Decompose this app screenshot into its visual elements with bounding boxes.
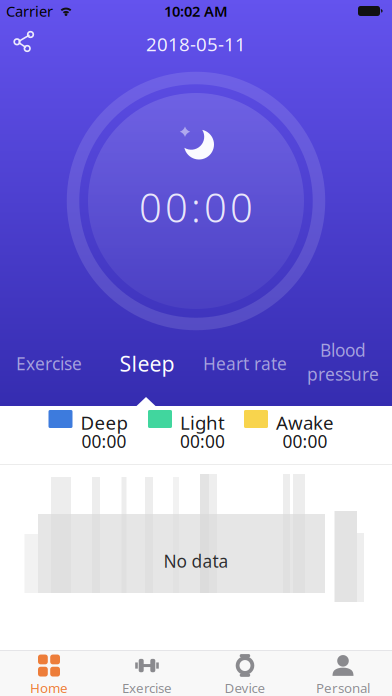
staticText: Carrier — [6, 1, 53, 21]
staticText: pressure — [307, 362, 379, 385]
staticText: Blood — [320, 338, 366, 361]
staticText: 10:02 AM — [164, 1, 228, 21]
staticText: Personal — [316, 679, 370, 696]
staticText: Awake — [276, 410, 334, 435]
button[interactable]: Exercise — [98, 651, 196, 696]
staticText: 00:00 — [180, 430, 225, 453]
button[interactable]: Device — [196, 651, 294, 696]
staticText: Exercise — [16, 352, 82, 375]
staticText: No data — [163, 549, 228, 572]
staticText: Sleep — [119, 349, 174, 378]
button[interactable]: Sleep — [98, 330, 196, 406]
staticText: 00:00 — [139, 180, 253, 233]
staticText: Exercise — [122, 679, 172, 696]
staticText: Deep — [80, 410, 127, 435]
staticText: Light — [180, 410, 225, 435]
staticText: 00:00 — [282, 430, 327, 453]
staticText: 2018-05-11 — [146, 32, 246, 56]
button[interactable]: Blood — [294, 330, 392, 406]
button[interactable]: Exercise — [0, 330, 98, 406]
staticText: Home — [30, 679, 68, 696]
button[interactable]: Personal — [294, 651, 392, 696]
button[interactable]: Home — [0, 651, 98, 696]
button[interactable]: Heart rate — [196, 330, 294, 406]
staticText: Device — [224, 679, 265, 696]
staticText: Heart rate — [203, 352, 287, 375]
staticText: 00:00 — [81, 430, 126, 453]
button[interactable]: Share — [0, 29, 35, 53]
